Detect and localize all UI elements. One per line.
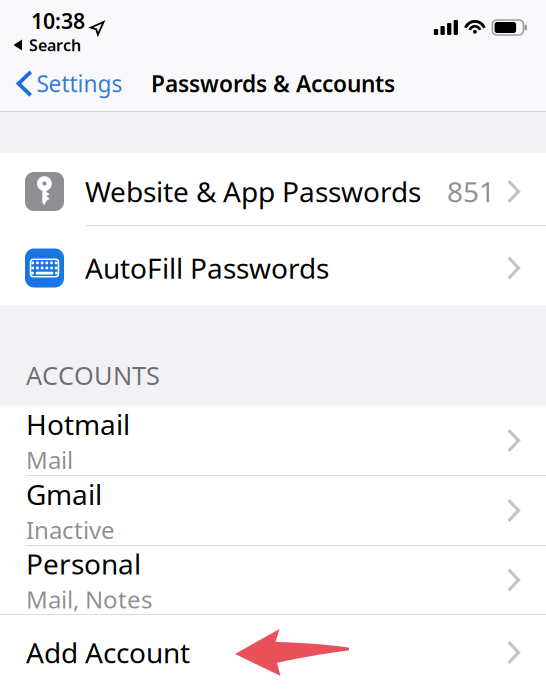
staticText: Personal [26, 545, 141, 582]
button[interactable]: Add Account [0, 615, 546, 690]
staticText: ACCOUNTS [26, 358, 160, 392]
staticText: Website & App Passwords [85, 173, 421, 210]
staticText: Passwords & Accounts [151, 68, 395, 98]
staticText: Gmail [26, 475, 102, 513]
button[interactable]: Gmail [0, 476, 546, 545]
button[interactable]: Personal [0, 546, 546, 614]
staticText: Hotmail [26, 405, 130, 443]
staticText: Mail [26, 444, 73, 476]
staticText: Mail, Notes [26, 583, 152, 615]
button[interactable]: Hotmail [0, 406, 546, 475]
staticText: Settings [36, 68, 122, 98]
staticText: 10:38 [31, 7, 85, 35]
button[interactable]: Website & App Passwords [0, 153, 546, 225]
staticText: AutoFill Passwords [85, 249, 329, 287]
staticText: Add Account [26, 634, 190, 671]
staticText: Search [29, 34, 81, 56]
button[interactable]: AutoFill Passwords [0, 226, 546, 305]
staticText: Inactive [26, 514, 115, 546]
button[interactable]: Settings [0, 60, 122, 106]
staticText: 851 [447, 173, 495, 210]
